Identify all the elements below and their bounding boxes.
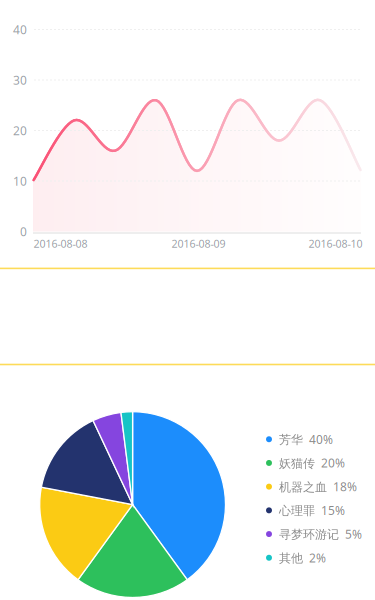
staticText: 30 [13, 72, 27, 88]
staticText: 2016-08-09 [171, 236, 225, 251]
button[interactable]: 机器之血 18% [266, 475, 370, 498]
staticText: 20 [13, 122, 27, 138]
staticText: 芳华 40% [279, 431, 333, 447]
staticText: 40 [13, 21, 27, 37]
staticText: 寻梦环游记 5% [279, 526, 362, 542]
staticText: 妖猫传 20% [279, 455, 345, 471]
button[interactable]: 寻梦环游记 5% [266, 522, 370, 546]
staticText: 2016-08-08 [33, 236, 87, 251]
staticText: 其他 2% [279, 550, 326, 566]
button[interactable]: 其他 2% [266, 546, 370, 570]
staticText: 2016-08-10 [308, 236, 362, 251]
staticText: 0 [20, 223, 27, 239]
staticText: 10 [13, 173, 27, 189]
button[interactable]: 芳华 40% [266, 427, 370, 451]
button[interactable]: 妖猫传 20% [266, 451, 370, 475]
button[interactable]: 心理罪 15% [266, 498, 370, 522]
staticText: 机器之血 18% [279, 479, 357, 495]
staticText: 心理罪 15% [279, 502, 345, 518]
